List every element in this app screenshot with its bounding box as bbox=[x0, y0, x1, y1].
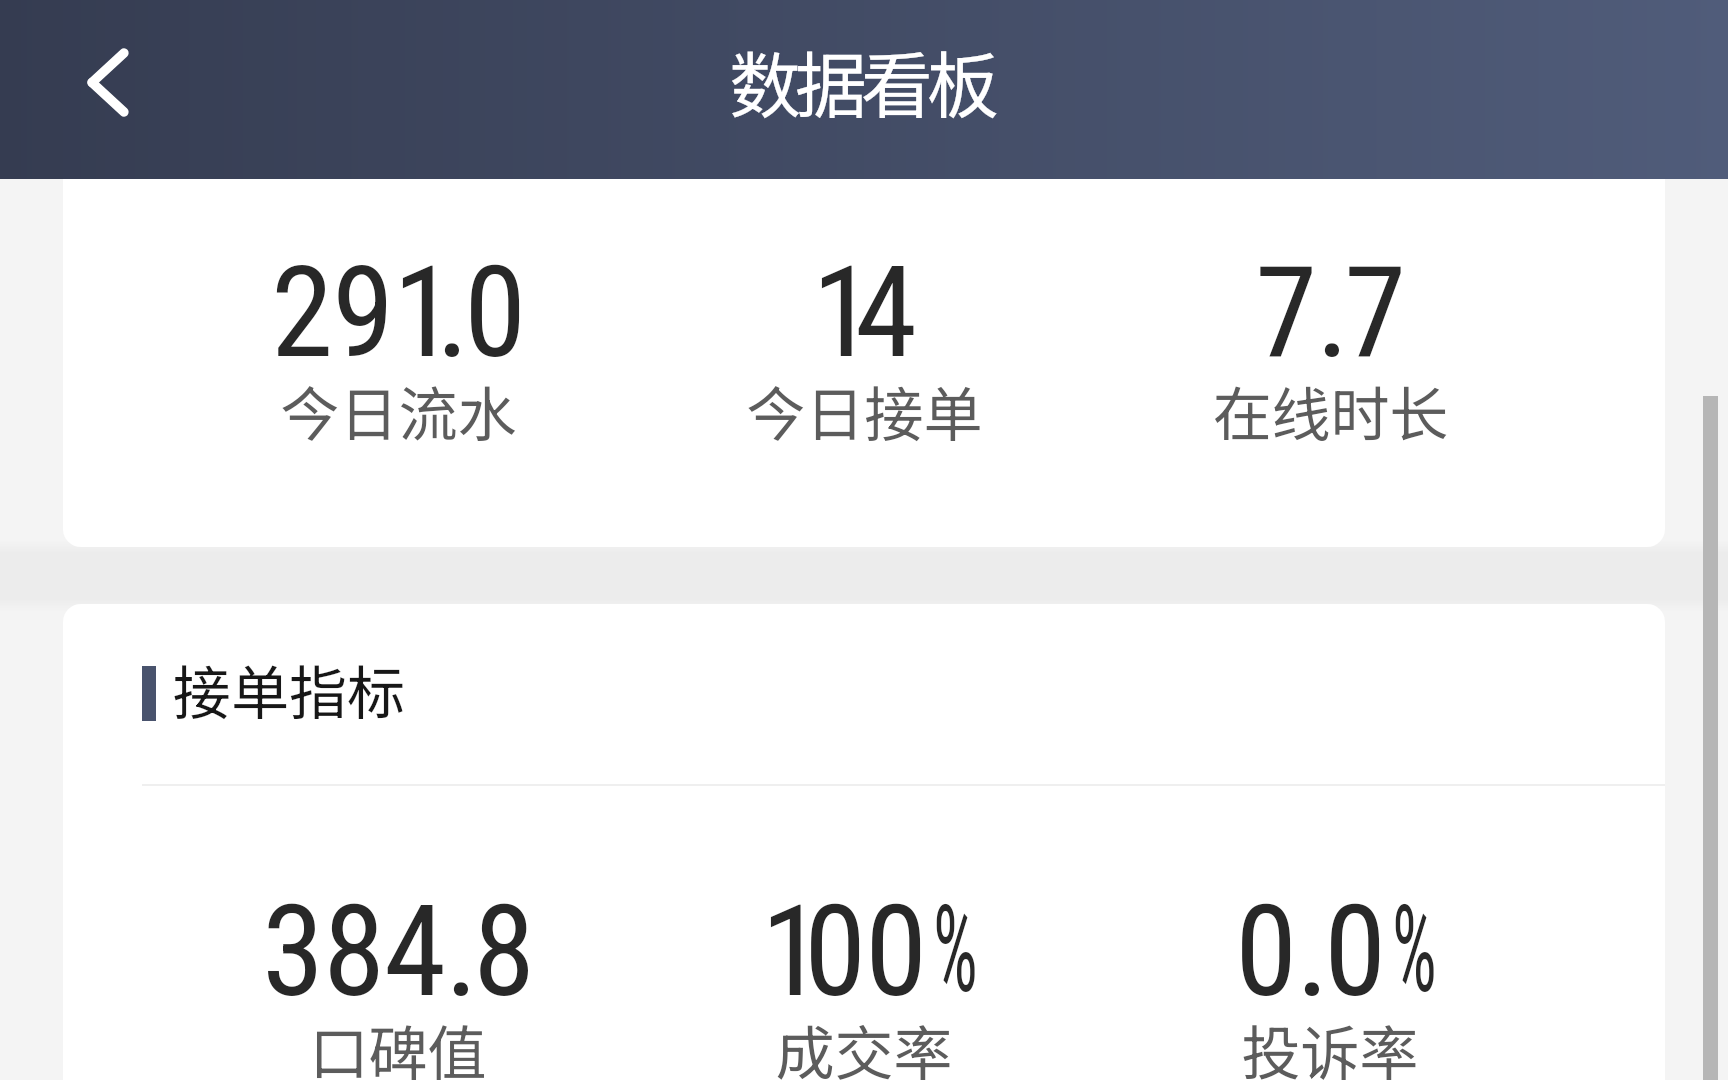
button[interactable]: 1 bbox=[631, 235, 1097, 476]
button[interactable]: 接单指标 bbox=[63, 651, 1665, 735]
staticText: 成交率 bbox=[775, 1007, 953, 1080]
staticText: 0 bbox=[804, 878, 865, 1026]
staticText: 4 bbox=[855, 239, 916, 387]
button[interactable]: 2 bbox=[165, 235, 631, 476]
staticText: 在线时长 bbox=[1212, 368, 1449, 453]
staticText: . bbox=[1316, 239, 1344, 387]
staticText: . bbox=[445, 878, 473, 1026]
staticText: 2 bbox=[271, 239, 332, 387]
staticText: % bbox=[1392, 879, 1419, 1022]
staticText: 8 bbox=[473, 878, 534, 1026]
staticText: . bbox=[1296, 878, 1324, 1026]
staticText: 1 bbox=[761, 878, 804, 1026]
button[interactable]: 7 bbox=[1097, 235, 1563, 476]
staticText: 9 bbox=[332, 239, 393, 387]
staticText: 投诉率 bbox=[1241, 1007, 1419, 1080]
staticText: 4 bbox=[384, 878, 445, 1026]
staticText: % bbox=[933, 879, 960, 1022]
staticText: 0 bbox=[464, 239, 525, 387]
staticText: 0 bbox=[1324, 878, 1385, 1026]
staticText: 今日流水 bbox=[280, 368, 517, 453]
staticText: 今日接单 bbox=[746, 368, 983, 453]
staticText: 7 bbox=[1344, 239, 1405, 387]
staticText: . bbox=[436, 239, 464, 387]
staticText: 1 bbox=[812, 239, 855, 387]
staticText: 7 bbox=[1255, 239, 1316, 387]
button[interactable]: 1 bbox=[631, 874, 1097, 1080]
staticText: 1 bbox=[393, 239, 436, 387]
button[interactable]: 3 bbox=[165, 874, 631, 1080]
button[interactable]: Back bbox=[62, 36, 154, 128]
staticText: 数据看板 bbox=[729, 28, 994, 132]
button[interactable]: 0 bbox=[1097, 874, 1563, 1080]
staticText: 3 bbox=[262, 878, 323, 1026]
staticText: 0 bbox=[1235, 878, 1296, 1026]
staticText: 口碑值 bbox=[309, 1007, 487, 1080]
staticText: 接单指标 bbox=[173, 647, 406, 731]
staticText: 0 bbox=[865, 878, 926, 1026]
staticText: 8 bbox=[323, 878, 384, 1026]
